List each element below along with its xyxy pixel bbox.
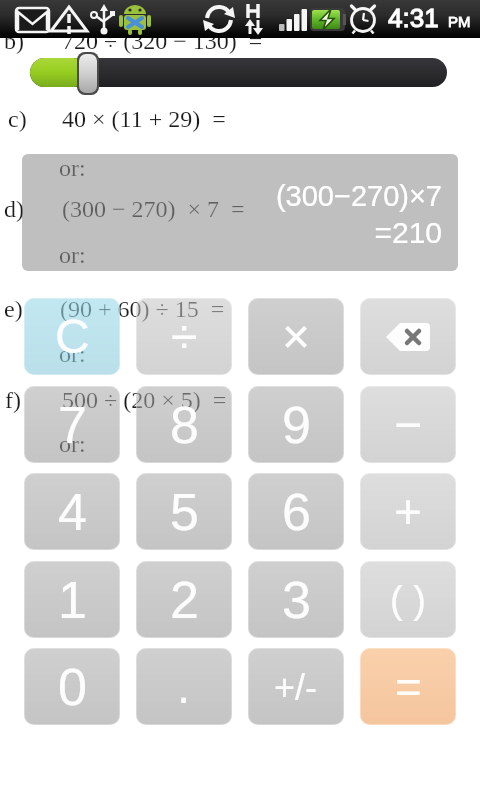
staticText: .: [177, 660, 191, 714]
button[interactable]: =: [360, 648, 456, 725]
staticText: 6: [282, 483, 311, 541]
staticText: 4: [58, 483, 87, 541]
staticText: =: [395, 661, 422, 712]
button[interactable]: ×: [248, 298, 344, 375]
staticText: or:: [59, 155, 86, 182]
staticText: b): [4, 28, 24, 55]
button[interactable]: 8: [136, 386, 232, 463]
staticText: 9: [282, 396, 311, 454]
staticText: +/-: [274, 667, 318, 707]
button[interactable]: [22, 154, 458, 271]
staticText: 7: [58, 396, 87, 454]
staticText: +: [394, 485, 423, 539]
staticText: 40 × (11 + 29) =: [62, 106, 226, 133]
button[interactable]: C: [24, 298, 120, 375]
staticText: 1: [58, 571, 87, 629]
staticText: f): [5, 387, 21, 414]
staticText: 3: [282, 571, 311, 629]
staticText: 4:31: [388, 3, 439, 32]
staticText: e): [4, 296, 23, 323]
staticText: =210: [22, 216, 442, 250]
staticText: (300−270)×7: [22, 180, 442, 212]
staticText: (300 − 270) × 7 =: [62, 196, 245, 223]
staticText: or:: [59, 242, 86, 269]
staticText: 720 ÷ (320 − 130) =: [62, 28, 263, 55]
staticText: 500 ÷ (20 × 5) =: [62, 387, 227, 414]
button[interactable]: −: [360, 386, 456, 463]
staticText: c): [8, 106, 27, 133]
button[interactable]: ÷: [136, 298, 232, 375]
button[interactable]: .: [136, 648, 232, 725]
staticText: 0: [58, 658, 87, 716]
button[interactable]: 0: [24, 648, 120, 725]
button[interactable]: +/-: [248, 648, 344, 725]
button[interactable]: 2: [136, 561, 232, 638]
button[interactable]: 4: [24, 473, 120, 550]
staticText: −: [394, 398, 423, 452]
staticText: 5: [170, 483, 199, 541]
button[interactable]: 5: [136, 473, 232, 550]
staticText: 8: [170, 396, 199, 454]
button[interactable]: [30, 52, 447, 95]
button[interactable]: +: [360, 473, 456, 550]
staticText: ( ): [390, 579, 426, 621]
staticText: C: [55, 310, 90, 364]
button[interactable]: 7: [24, 386, 120, 463]
button[interactable]: 1: [24, 561, 120, 638]
staticText: ÷: [171, 310, 198, 364]
button[interactable]: ( ): [360, 561, 456, 638]
button[interactable]: 9: [248, 386, 344, 463]
staticText: PM: [448, 13, 471, 30]
staticText: (90 + 60) ÷ 15 =: [60, 296, 225, 323]
staticText: or:: [59, 431, 86, 458]
staticText: 2: [170, 571, 199, 629]
staticText: or:: [59, 341, 86, 368]
button[interactable]: 3: [248, 561, 344, 638]
button[interactable]: 6: [248, 473, 344, 550]
staticText: d): [4, 196, 24, 223]
button[interactable]: [360, 298, 456, 375]
staticText: ×: [282, 310, 311, 364]
